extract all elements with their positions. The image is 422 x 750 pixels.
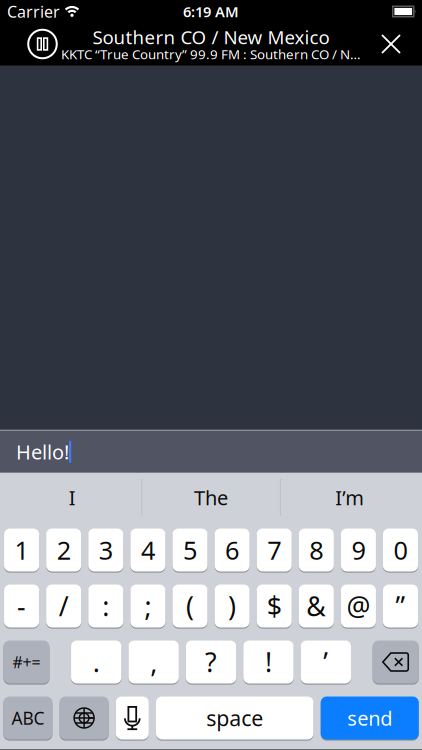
button[interactable]: 5: [172, 528, 207, 571]
button[interactable]: 7: [257, 528, 292, 571]
staticText: I: [69, 484, 76, 511]
staticText: @: [346, 588, 370, 624]
staticText: 8: [309, 533, 323, 567]
button[interactable]: I’m: [281, 472, 419, 522]
button[interactable]: Next keyboard: [60, 696, 109, 739]
button[interactable]: Dictation: [116, 696, 149, 739]
button[interactable]: 0: [383, 528, 418, 571]
staticText: The: [194, 484, 228, 511]
staticText: ;: [144, 588, 151, 624]
staticText: ABC: [11, 706, 44, 729]
staticText: 2: [57, 533, 71, 567]
button[interactable]: 9: [341, 528, 376, 571]
button[interactable]: space: [156, 696, 313, 739]
button[interactable]: @: [341, 584, 376, 627]
button[interactable]: 8: [299, 528, 334, 571]
staticText: ?: [205, 644, 217, 680]
staticText: Hello!: [16, 438, 69, 465]
staticText: space: [206, 704, 263, 732]
button[interactable]: Delete: [373, 640, 419, 683]
staticText: 3: [99, 533, 113, 567]
button[interactable]: ,: [128, 640, 179, 683]
button[interactable]: !: [243, 640, 294, 683]
staticText: (: [186, 588, 194, 624]
button[interactable]: Letters: [3, 696, 52, 739]
staticText: ): [228, 588, 236, 624]
staticText: #+=: [12, 651, 40, 673]
staticText: 7: [267, 533, 281, 567]
staticText: !: [265, 644, 272, 680]
button[interactable]: $: [257, 584, 292, 627]
button[interactable]: Pause: [0, 28, 58, 59]
staticText: Southern CO / New Mexico: [92, 25, 329, 49]
button[interactable]: 2: [46, 528, 81, 571]
button[interactable]: 3: [88, 528, 123, 571]
staticText: 0: [393, 533, 407, 567]
staticText: :: [102, 588, 109, 624]
staticText: -: [17, 588, 26, 624]
button[interactable]: ;: [130, 584, 165, 627]
button[interactable]: Close: [381, 34, 422, 54]
button[interactable]: ”: [383, 584, 418, 627]
button[interactable]: 6: [214, 528, 250, 571]
staticText: 6:19 AM: [183, 2, 239, 21]
button[interactable]: (: [172, 584, 207, 627]
button[interactable]: -: [4, 584, 39, 627]
staticText: ”: [395, 588, 405, 624]
staticText: $: [267, 588, 282, 624]
staticText: 4: [141, 533, 155, 567]
button[interactable]: ): [214, 584, 250, 627]
button[interactable]: I: [3, 472, 141, 522]
button[interactable]: More symbols: [3, 640, 49, 683]
staticText: &: [306, 588, 326, 624]
button[interactable]: 1: [4, 528, 39, 571]
staticText: /: [59, 588, 69, 624]
staticText: 9: [351, 533, 365, 567]
staticText: 6: [225, 533, 239, 567]
staticText: 5: [183, 533, 197, 567]
button[interactable]: &: [299, 584, 334, 627]
staticText: I’m: [335, 484, 364, 511]
staticText: Carrier: [7, 1, 60, 22]
staticText: 1: [15, 533, 29, 567]
button[interactable]: Message: [0, 431, 422, 472]
staticText: ,: [150, 644, 157, 680]
button[interactable]: ’: [301, 640, 351, 683]
staticText: send: [347, 705, 392, 731]
staticText: KKTC “True Country” 99.9 FM : Southern C…: [61, 45, 361, 63]
button[interactable]: /: [46, 584, 81, 627]
button[interactable]: .: [71, 640, 121, 683]
button[interactable]: :: [88, 584, 123, 627]
staticText: .: [93, 644, 100, 680]
staticText: ’: [323, 644, 328, 680]
button[interactable]: 4: [130, 528, 165, 571]
button[interactable]: The: [142, 472, 280, 522]
button[interactable]: ?: [186, 640, 236, 683]
button[interactable]: send: [321, 696, 419, 739]
